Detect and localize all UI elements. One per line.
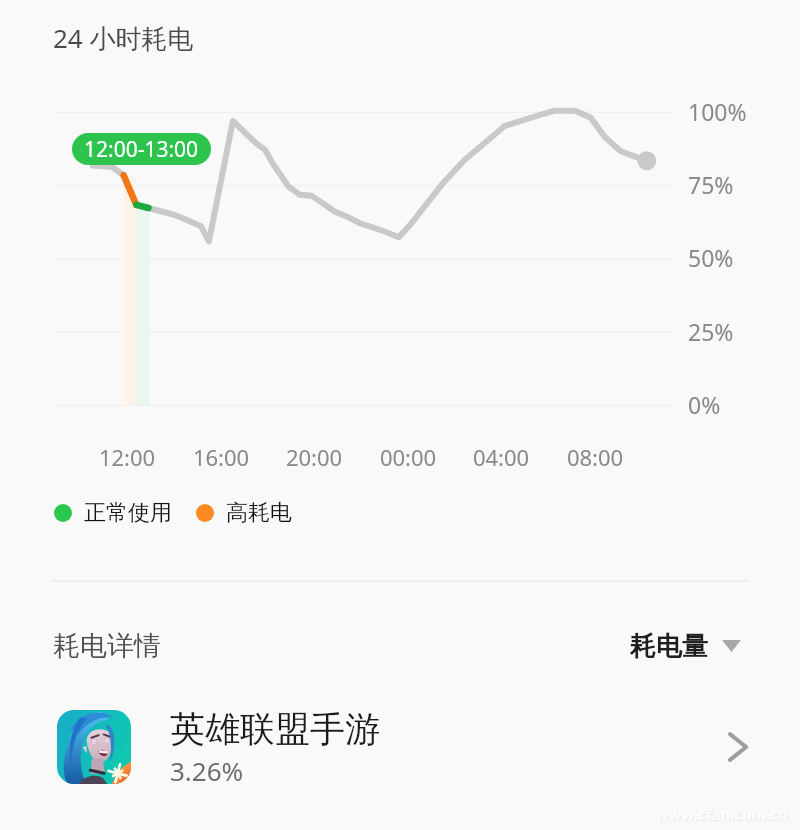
staticText: 00:00: [363, 442, 453, 472]
staticText: 25%: [688, 316, 734, 347]
staticText: 英雄联盟手游: [170, 707, 380, 751]
staticText: 75%: [688, 169, 734, 200]
staticText: www.cfan.com.cn: [657, 805, 790, 825]
button[interactable]: 英雄联盟手游: [0, 701, 800, 793]
staticText: 24 小时耗电: [53, 20, 194, 56]
staticText: 100%: [688, 96, 747, 127]
staticText: 耗电量: [630, 630, 708, 662]
staticText: 20:00: [269, 442, 359, 472]
other: Sort: [722, 640, 741, 652]
staticText: 高耗电: [226, 499, 292, 527]
staticText: 50%: [688, 242, 734, 273]
other: Details: [724, 732, 754, 762]
staticText: 12:00: [82, 442, 172, 472]
staticText: 3.26%: [170, 753, 244, 788]
staticText: 正常使用: [84, 499, 172, 527]
staticText: 0%: [688, 389, 721, 420]
button[interactable]: 24 hour battery level chart: [40, 90, 760, 420]
staticText: 12:00-13:00: [84, 135, 199, 164]
staticText: 耗电详情: [53, 629, 161, 663]
staticText: 08:00: [550, 442, 640, 472]
staticText: 16:00: [176, 442, 266, 472]
staticText: 04:00: [456, 442, 546, 472]
button[interactable]: 耗电量: [624, 622, 747, 670]
button[interactable]: 12:00-13:00: [72, 133, 211, 165]
staticText: www.cfan.com.cn: [656, 804, 789, 824]
